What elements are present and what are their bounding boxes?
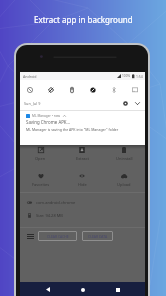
staticText: Saving Chrome APK... bbox=[26, 119, 71, 125]
staticText: Upload bbox=[117, 182, 131, 187]
staticText: com.android.chrome bbox=[36, 200, 76, 205]
button[interactable]: Settings bbox=[121, 99, 130, 108]
button[interactable]: Quick setting bbox=[103, 83, 124, 97]
staticText: Hide bbox=[78, 182, 87, 187]
button[interactable]: Recent apps bbox=[111, 283, 124, 296]
staticText: Favorites bbox=[32, 182, 50, 187]
staticText: Open bbox=[35, 156, 46, 161]
button[interactable]: com.android.chrome bbox=[20, 196, 145, 208]
button[interactable]: Menu bbox=[26, 232, 35, 241]
button[interactable]: Size: 94.28 MB bbox=[20, 209, 145, 221]
button[interactable]: Back bbox=[41, 283, 54, 296]
button[interactable]: CLEAR CACHE bbox=[38, 231, 77, 241]
button[interactable]: Quick setting bbox=[61, 83, 82, 97]
staticText: Sun, Jul 9 bbox=[24, 101, 41, 106]
button[interactable]: Uninstall bbox=[103, 142, 145, 163]
staticText: CLEAR DATA bbox=[88, 234, 108, 239]
staticText: Android bbox=[23, 74, 37, 79]
staticText: Extract app in background bbox=[34, 14, 133, 25]
button[interactable]: Quick setting bbox=[40, 83, 61, 97]
button[interactable]: Open bbox=[20, 142, 61, 163]
button[interactable]: Upload bbox=[103, 168, 145, 189]
button[interactable]: Favorites bbox=[20, 168, 61, 189]
staticText: ML Manager is saving the APK into "ML Ma… bbox=[26, 127, 119, 132]
button[interactable]: Home bbox=[76, 283, 89, 296]
staticText: Uninstall bbox=[116, 156, 133, 161]
button[interactable]: Hide bbox=[61, 168, 103, 189]
staticText: ML Manager • now bbox=[32, 114, 61, 118]
button[interactable]: Quick setting bbox=[124, 83, 145, 97]
staticText: Size: 94.28 MB bbox=[36, 213, 63, 218]
button[interactable]: Extract bbox=[61, 142, 103, 163]
staticText: 1:54 bbox=[136, 74, 143, 79]
staticText: 100% bbox=[122, 74, 131, 78]
staticText: CLEAR CACHE bbox=[47, 234, 69, 239]
staticText: Extract bbox=[76, 156, 89, 161]
button[interactable]: Quick setting bbox=[20, 83, 40, 97]
button[interactable]: CLEAR DATA bbox=[82, 231, 113, 241]
button[interactable]: Expand bbox=[133, 99, 142, 108]
button[interactable]: Quick setting bbox=[82, 83, 103, 97]
